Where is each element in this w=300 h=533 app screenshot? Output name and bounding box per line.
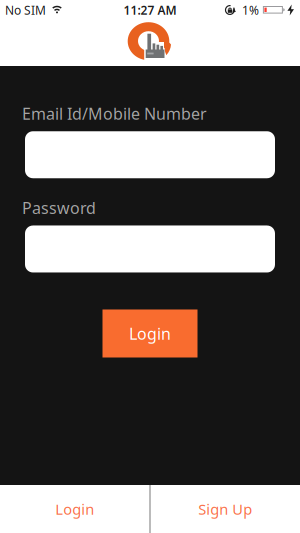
button[interactable]: Email Id/Mobile Number: [25, 131, 275, 178]
staticText: Sign Up: [198, 499, 252, 519]
staticText: Email Id/Mobile Number: [22, 103, 207, 124]
staticText: Login: [55, 499, 94, 519]
staticText: No SIM: [5, 2, 46, 18]
staticText: 11:27 AM: [123, 2, 176, 18]
staticText: Login: [129, 323, 171, 344]
staticText: Password: [22, 197, 96, 218]
button[interactable]: Login: [0, 485, 149, 533]
button[interactable]: Sign Up: [150, 485, 300, 533]
button[interactable]: Login: [102, 309, 197, 357]
staticText: 1%: [242, 2, 259, 18]
button[interactable]: Password: [25, 225, 275, 272]
